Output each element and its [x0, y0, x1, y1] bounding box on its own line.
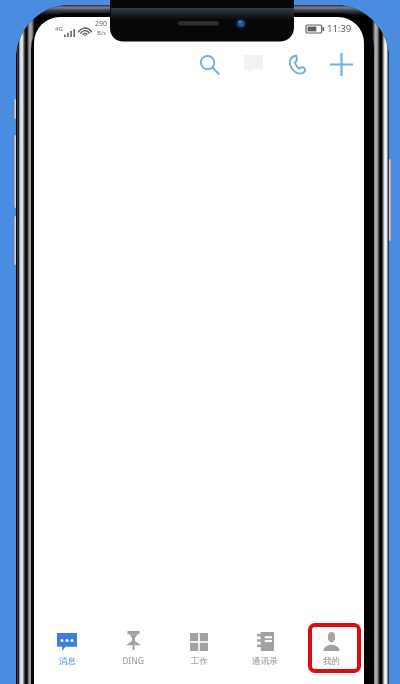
staticText: B/s — [97, 29, 107, 37]
button[interactable]: Add — [319, 46, 363, 82]
staticText: 工作 — [191, 656, 208, 667]
staticText: DING — [122, 655, 144, 667]
staticText: 我的 — [323, 656, 340, 667]
button[interactable]: Messages — [231, 46, 275, 82]
staticText: 消息 — [59, 656, 76, 667]
staticText: 通讯录 — [252, 656, 278, 667]
staticText: 290 — [95, 19, 108, 29]
button[interactable]: 消息 — [34, 632, 100, 667]
button[interactable]: 通讯录 — [232, 632, 298, 667]
button[interactable]: 工作 — [166, 632, 232, 667]
button[interactable]: Call — [275, 46, 319, 82]
button[interactable]: DING — [100, 631, 166, 667]
staticText: 11:39 — [327, 22, 352, 35]
staticText: 4G — [55, 25, 63, 33]
button[interactable]: 我的 — [298, 632, 364, 667]
button[interactable]: Search — [187, 46, 231, 82]
